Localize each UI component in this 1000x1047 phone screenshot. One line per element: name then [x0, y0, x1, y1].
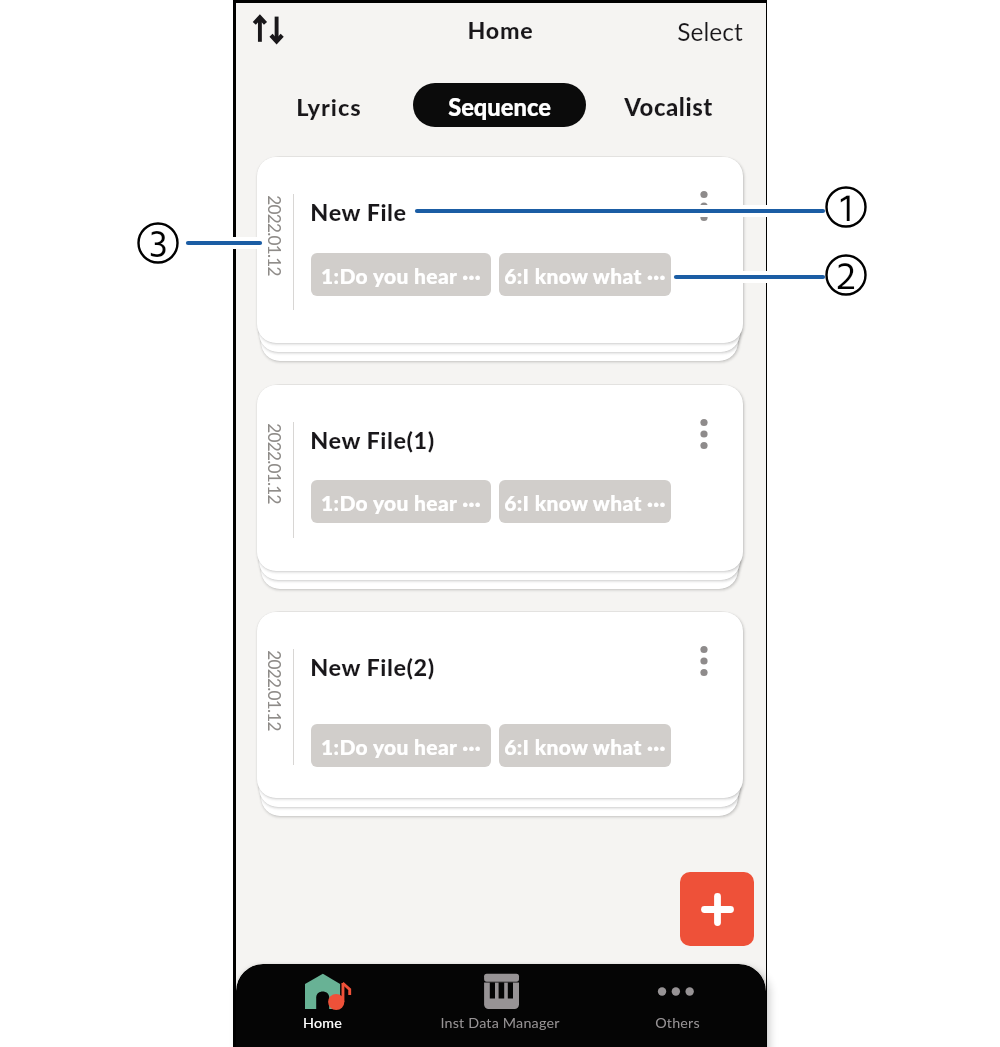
staticText: New File [310, 198, 407, 226]
button[interactable]: More options [685, 183, 723, 229]
button[interactable]: Create new file [680, 872, 754, 946]
button[interactable] [257, 157, 743, 343]
staticText: 2022.01.12 [264, 650, 285, 731]
button[interactable]: Vocalist [610, 85, 726, 128]
staticText: Home [467, 16, 534, 44]
staticText: Inst Data Manager [440, 1014, 560, 1031]
button[interactable]: Others [589, 964, 766, 1047]
staticText: 6:I know what ··· [504, 490, 666, 515]
button[interactable]: Inst Data Manager [413, 964, 590, 1047]
staticText: 1 [840, 179, 853, 225]
staticText: 2 [836, 247, 856, 293]
staticText: New File(2) [310, 653, 435, 681]
staticText: Sequence [448, 93, 551, 121]
button[interactable]: 1:Do you hear ··· [311, 253, 491, 296]
staticText: 2022.01.12 [264, 423, 285, 504]
button[interactable]: 1:Do you hear ··· [311, 480, 491, 523]
button[interactable]: Home [236, 964, 413, 1047]
button[interactable]: Sequence [413, 83, 586, 127]
staticText: 1:Do you hear ··· [321, 263, 481, 288]
button[interactable]: 6:I know what ··· [499, 724, 671, 767]
staticText: Others [655, 1014, 700, 1031]
staticText: 1:Do you hear ··· [321, 734, 481, 759]
button[interactable]: More options [685, 411, 723, 457]
button[interactable]: Lyrics [271, 85, 387, 128]
staticText: 3 [149, 215, 168, 261]
staticText: 6:I know what ··· [504, 263, 666, 288]
staticText: 1:Do you hear ··· [321, 490, 481, 515]
staticText: Select [677, 17, 743, 46]
button[interactable]: Sort order [246, 10, 290, 48]
button[interactable] [257, 385, 743, 571]
staticText: Home [303, 1014, 342, 1031]
staticText: Lyrics [296, 93, 362, 121]
staticText: Vocalist [624, 92, 713, 121]
button[interactable] [257, 612, 743, 798]
button[interactable]: 6:I know what ··· [499, 480, 671, 523]
staticText: New File(1) [310, 426, 435, 454]
button[interactable]: More options [685, 638, 723, 684]
button[interactable]: 1:Do you hear ··· [311, 724, 491, 767]
staticText: 6:I know what ··· [504, 734, 666, 759]
button[interactable]: Select [648, 11, 743, 51]
staticText: 2022.01.12 [264, 195, 285, 276]
button[interactable]: 6:I know what ··· [499, 253, 671, 296]
